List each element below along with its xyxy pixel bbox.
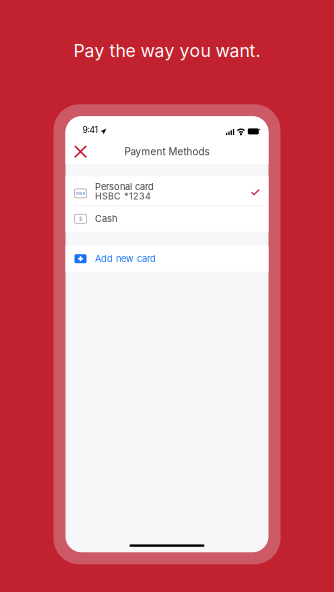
button[interactable]: Add new card bbox=[65, 246, 268, 272]
staticText: VISA bbox=[75, 191, 85, 196]
staticText: Add new card bbox=[95, 253, 156, 264]
staticText: 9:41 bbox=[82, 125, 97, 135]
staticText: Pay the way you want. bbox=[73, 40, 260, 61]
button[interactable]: $ bbox=[65, 206, 268, 232]
staticText: $ bbox=[79, 215, 82, 222]
staticText: Payment Methods bbox=[124, 146, 209, 158]
staticText: Cash bbox=[95, 213, 117, 224]
staticText: Personal card bbox=[95, 181, 154, 192]
staticText: HSBC *1234 bbox=[95, 191, 151, 202]
button[interactable]: VISA bbox=[65, 176, 268, 205]
button[interactable]: Close bbox=[69, 141, 91, 163]
